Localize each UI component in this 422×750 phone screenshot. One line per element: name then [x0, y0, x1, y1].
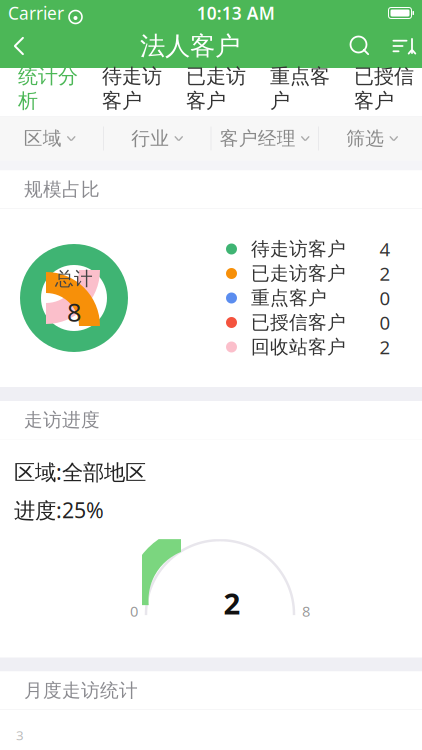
staticText: 10:13 AM — [197, 1, 275, 24]
staticText: 重点客户 — [270, 64, 330, 113]
staticText: 进度:25% — [14, 496, 104, 524]
staticText: 8 — [67, 295, 81, 329]
staticText: 2 — [379, 335, 390, 359]
staticText: 回收站客户 — [251, 335, 346, 358]
staticText: 筛选 — [346, 127, 384, 150]
staticText: 月度走访统计 — [24, 679, 138, 702]
button[interactable]: 客户经理 — [211, 116, 318, 160]
staticText: 0 — [130, 601, 138, 621]
staticText: 2 — [379, 261, 390, 286]
button[interactable]: 已走访客户 — [174, 68, 258, 116]
staticText: 区域 — [24, 127, 62, 150]
staticText: 待走访客户 — [102, 64, 162, 113]
staticText: 客户经理 — [220, 127, 296, 150]
button[interactable]: 待走访客户 — [90, 68, 174, 116]
staticText: 3 — [16, 726, 24, 744]
button[interactable]: Sort — [382, 24, 422, 68]
staticText: 4 — [379, 237, 390, 261]
staticText — [63, 0, 69, 28]
staticText: 区域:全部地区 — [14, 457, 146, 486]
staticText: 走访进度 — [24, 408, 100, 431]
button[interactable]: Search — [338, 24, 382, 68]
staticText: 已授信客户 — [251, 311, 346, 334]
staticText: 已走访客户 — [186, 64, 246, 113]
button[interactable]: 行业 — [103, 116, 211, 160]
button[interactable]: 统计分析 — [6, 68, 90, 116]
staticText: 8 — [302, 601, 310, 621]
button[interactable]: 重点客户 — [258, 68, 342, 116]
staticText: 待走访客户 — [251, 237, 346, 260]
button[interactable]: 区域 — [0, 116, 103, 160]
staticText: 0 — [379, 310, 390, 335]
button[interactable]: Back — [0, 24, 42, 68]
staticText: 总计 — [55, 267, 93, 290]
button[interactable]: 已授信客户 — [342, 68, 422, 116]
button[interactable]: 筛选 — [318, 116, 422, 160]
staticText: 法人客户 — [140, 30, 240, 61]
staticText: 行业 — [131, 127, 169, 150]
staticText: 2 — [223, 584, 240, 623]
staticText: Carrier — [8, 1, 64, 24]
staticText: 已授信客户 — [354, 64, 414, 113]
staticText: 已走访客户 — [251, 262, 346, 285]
staticText: 规模占比 — [24, 178, 100, 201]
staticText: 重点客户 — [251, 286, 327, 309]
staticText: 0 — [379, 286, 390, 310]
staticText: 统计分析 — [18, 64, 78, 113]
